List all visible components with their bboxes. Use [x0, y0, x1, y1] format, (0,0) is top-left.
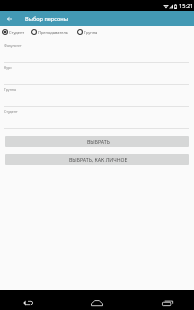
- button[interactable]: Группа: [77, 29, 98, 35]
- button[interactable]: Back: [0, 11, 19, 26]
- staticText: ВЫБРАТЬ: [87, 138, 110, 145]
- staticText: Группа: [4, 87, 16, 92]
- staticText: ВЫБРАТЬ, КАК ЛИЧНОЕ: [69, 156, 128, 163]
- staticText: Студент: [9, 30, 25, 35]
- button[interactable]: Home: [82, 293, 112, 310]
- staticText: 15:21: [179, 2, 194, 10]
- staticText: Выбор персоны: [25, 15, 68, 23]
- button[interactable]: ВЫБРАТЬ: [5, 136, 189, 147]
- staticText: Преподаватель: [38, 30, 68, 35]
- staticText: Группа: [84, 30, 98, 35]
- button[interactable]: Back: [13, 293, 43, 310]
- staticText: Курс: [4, 65, 12, 70]
- button[interactable]: Студент: [2, 29, 25, 35]
- staticText: Факультет: [4, 43, 22, 48]
- button[interactable]: ВЫБРАТЬ, КАК ЛИЧНОЕ: [5, 154, 189, 165]
- staticText: Студент: [4, 109, 18, 114]
- button[interactable]: Recent apps: [152, 293, 182, 310]
- button[interactable]: Преподаватель: [31, 29, 68, 35]
